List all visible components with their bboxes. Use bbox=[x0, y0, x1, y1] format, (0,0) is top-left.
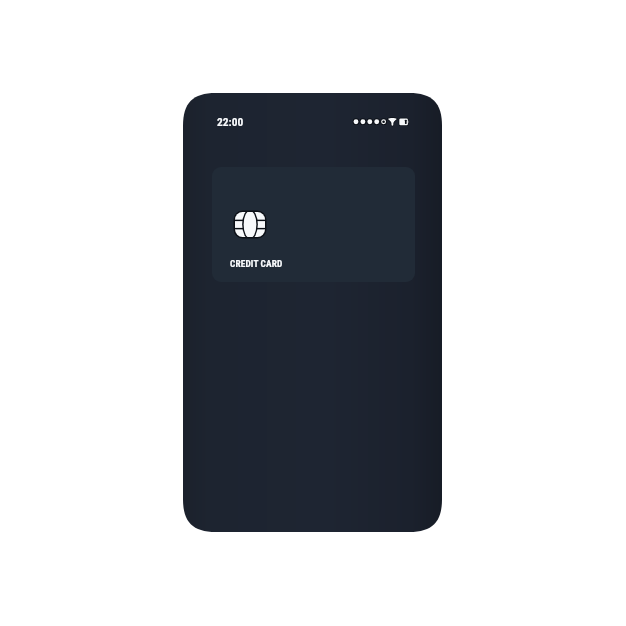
other: Signal, Wi-Fi and battery status bbox=[352, 115, 410, 129]
staticText: 22:00 bbox=[217, 115, 244, 128]
staticText: CREDIT CARD bbox=[230, 258, 283, 269]
button[interactable]: Card chip bbox=[212, 167, 415, 282]
other: Card chip bbox=[234, 211, 266, 238]
